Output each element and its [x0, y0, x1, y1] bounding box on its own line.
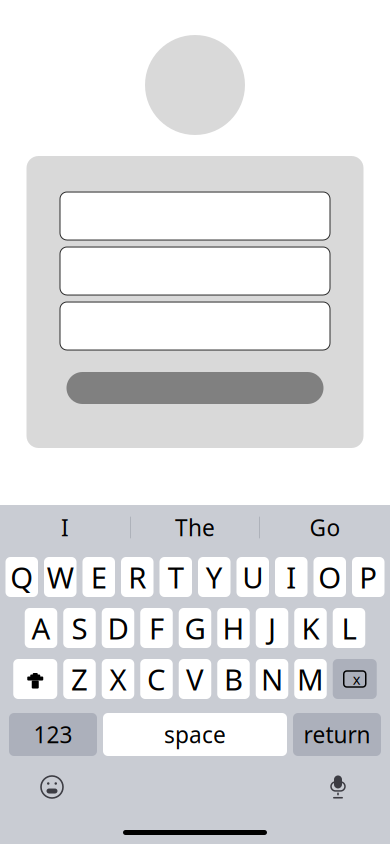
staticText: X [109, 659, 126, 698]
button[interactable]: Go [260, 505, 390, 550]
button[interactable]: Shift [13, 659, 57, 699]
staticText: return [303, 719, 370, 749]
button[interactable]: H [217, 608, 250, 648]
button[interactable]: 123 [9, 713, 97, 756]
staticText: Q [10, 557, 33, 596]
button[interactable]: Delete [333, 659, 377, 699]
staticText: W [47, 557, 74, 596]
staticText: O [318, 557, 341, 596]
button[interactable]: M [294, 659, 327, 699]
staticText: A [31, 608, 50, 647]
button[interactable]: R [121, 557, 153, 597]
button[interactable]: Submit [66, 372, 323, 404]
staticText: U [242, 557, 263, 596]
button[interactable]: Q [5, 557, 38, 597]
staticText: 123 [33, 719, 72, 749]
staticText: V [186, 659, 204, 698]
staticText: I [61, 512, 69, 542]
button[interactable]: Z [63, 659, 96, 699]
button[interactable]: W [44, 557, 76, 597]
staticText: The [175, 512, 215, 542]
button[interactable]: Emoji [30, 770, 74, 804]
button[interactable]: I [275, 557, 307, 597]
button[interactable]: The [131, 505, 259, 550]
button[interactable]: F [140, 608, 173, 648]
staticText: I [286, 557, 296, 596]
staticText: J [268, 608, 276, 647]
button[interactable]: P [352, 557, 384, 597]
staticText: space [164, 719, 226, 749]
button[interactable] [60, 247, 330, 295]
staticText: Y [206, 557, 223, 596]
staticText: T [168, 557, 184, 596]
button[interactable]: Y [198, 557, 230, 597]
button[interactable]: V [179, 659, 211, 699]
button[interactable]: D [102, 608, 134, 648]
button[interactable]: C [140, 659, 173, 699]
staticText: x [353, 669, 361, 689]
button[interactable]: T [159, 557, 192, 597]
button[interactable]: E [82, 557, 115, 597]
button[interactable]: J [256, 608, 288, 648]
button[interactable]: A [25, 608, 57, 648]
button[interactable]: S [63, 608, 96, 648]
staticText: S [71, 608, 87, 647]
button[interactable]: B [217, 659, 250, 699]
button[interactable]: Dictation [316, 770, 360, 804]
staticText: N [261, 659, 283, 698]
staticText: Z [71, 659, 88, 698]
staticText: Go [309, 512, 340, 542]
button[interactable]: return [293, 713, 381, 756]
button[interactable]: N [256, 659, 288, 699]
button[interactable] [60, 302, 330, 350]
staticText: B [224, 659, 243, 698]
staticText: L [341, 608, 356, 647]
button[interactable]: X [102, 659, 134, 699]
staticText: C [147, 659, 166, 698]
button[interactable] [60, 192, 330, 240]
staticText: G [184, 608, 205, 647]
staticText: H [222, 608, 244, 647]
button[interactable]: L [333, 608, 365, 648]
button[interactable]: O [313, 557, 346, 597]
staticText: P [359, 557, 377, 596]
staticText: K [301, 608, 319, 647]
staticText: M [297, 659, 324, 698]
staticText: E [91, 557, 107, 596]
button[interactable]: space [103, 713, 287, 756]
staticText: F [149, 608, 164, 647]
button[interactable]: U [236, 557, 269, 597]
staticText: D [107, 608, 128, 647]
button[interactable]: G [179, 608, 211, 648]
button[interactable]: K [294, 608, 327, 648]
staticText: R [128, 557, 146, 596]
button[interactable]: I [0, 505, 130, 550]
